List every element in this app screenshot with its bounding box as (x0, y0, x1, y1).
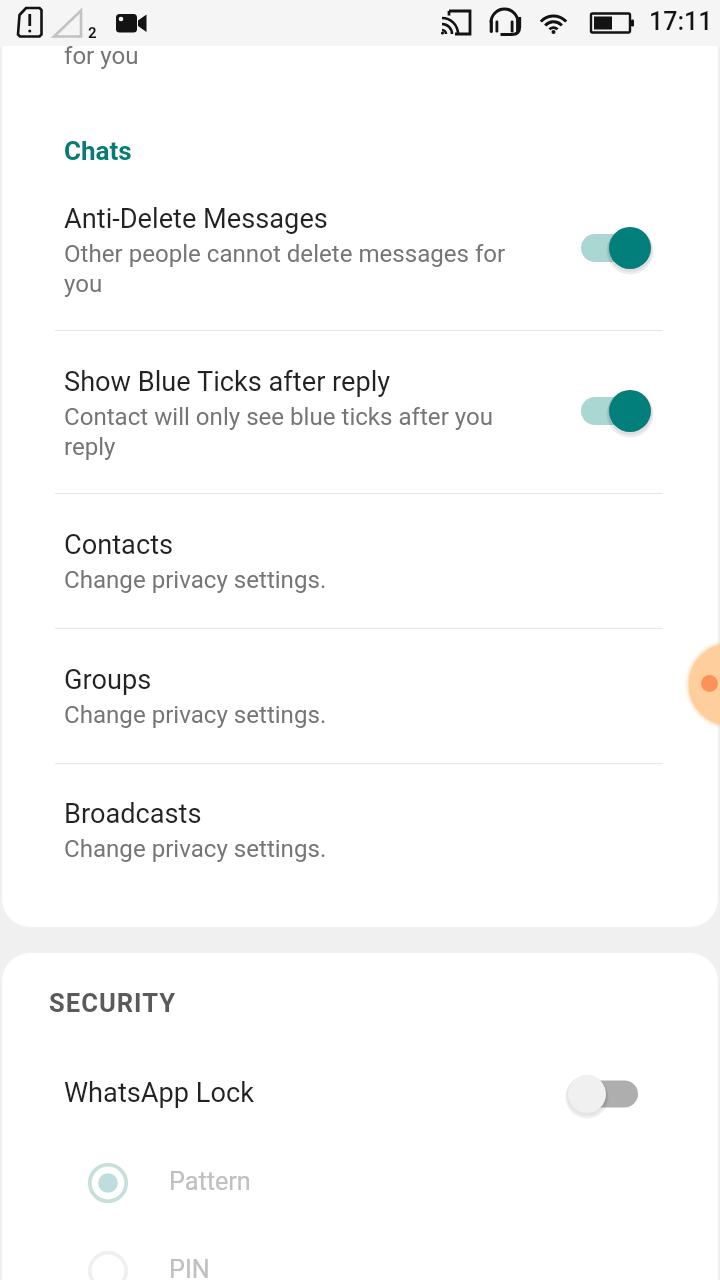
staticText: WhatsApp Lock (64, 1077, 254, 1109)
staticText: Contact will only see blue ticks after y… (64, 403, 494, 431)
button[interactable]: Contacts (2, 493, 718, 628)
staticText: Groups (64, 664, 152, 696)
staticText: Change privacy settings. (64, 835, 327, 863)
staticText: Anti-Delete Messages (64, 203, 328, 235)
staticText: Broadcasts (64, 798, 202, 830)
staticText: 2 (88, 24, 97, 42)
staticText: for you (64, 42, 139, 70)
staticText: reply (64, 433, 116, 461)
staticText: Contacts (64, 529, 174, 561)
button[interactable]: Toggle setting (555, 377, 667, 445)
button[interactable]: WhatsApp Lock (2, 1060, 718, 1134)
staticText: Chats (64, 136, 132, 166)
staticText: Pattern (169, 1167, 251, 1197)
button[interactable]: Groups (2, 628, 718, 763)
button[interactable]: Pattern lock (74, 1149, 142, 1217)
staticText: Change privacy settings. (64, 566, 327, 594)
staticText: PIN (169, 1255, 210, 1280)
button[interactable]: Broadcasts (2, 763, 718, 898)
staticText: SECURITY (49, 988, 177, 1018)
staticText: Change privacy settings. (64, 701, 327, 729)
staticText: 17:11 (649, 7, 713, 36)
button[interactable]: Show Blue Ticks after reply (2, 330, 718, 493)
button[interactable]: Anti-Delete Messages (2, 167, 718, 330)
staticText: Show Blue Ticks after reply (64, 366, 391, 398)
button[interactable]: Toggle setting (555, 214, 667, 282)
button[interactable]: Toggle WhatsApp Lock (545, 1060, 657, 1128)
staticText: you (64, 270, 103, 298)
staticText: Other people cannot delete messages for (64, 240, 506, 268)
button[interactable]: PIN lock (74, 1237, 142, 1280)
